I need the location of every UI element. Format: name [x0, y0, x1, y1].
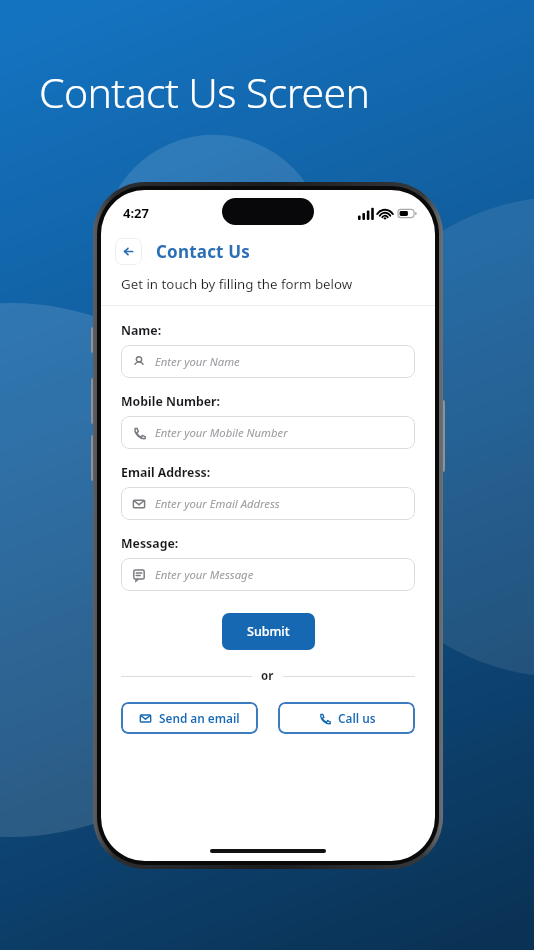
- staticText: Email Address:: [121, 464, 211, 481]
- staticText: Enter your Email Address: [155, 496, 280, 511]
- button[interactable]: Submit: [222, 613, 315, 650]
- button[interactable]: Back: [115, 238, 142, 265]
- staticText: Enter your Mobile Number: [155, 425, 288, 440]
- button[interactable]: Send an email: [121, 702, 258, 734]
- staticText: Message:: [121, 535, 179, 552]
- button[interactable]: Enter your Mobile Number: [121, 416, 415, 449]
- button[interactable]: Call us: [278, 702, 415, 734]
- staticText: or: [261, 668, 274, 684]
- staticText: Get in touch by filling the form below: [121, 275, 353, 293]
- staticText: Call us: [338, 710, 376, 726]
- staticText: Submit: [247, 623, 290, 640]
- button[interactable]: Enter your Name: [121, 345, 415, 378]
- staticText: Contact Us Screen: [39, 64, 370, 120]
- staticText: Enter your Message: [155, 567, 254, 582]
- button[interactable]: Enter your Message: [121, 558, 415, 591]
- staticText: Enter your Name: [155, 354, 240, 369]
- staticText: Contact Us: [156, 240, 251, 263]
- staticText: Mobile Number:: [121, 393, 220, 410]
- staticText: 4:27: [123, 204, 149, 222]
- staticText: Name:: [121, 322, 162, 339]
- staticText: Send an email: [159, 710, 240, 726]
- button[interactable]: Enter your Email Address: [121, 487, 415, 520]
